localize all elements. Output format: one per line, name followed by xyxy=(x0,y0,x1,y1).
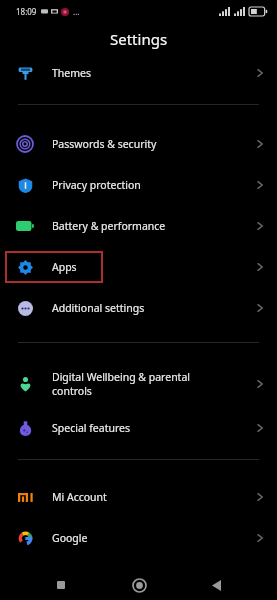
button[interactable]: Google xyxy=(0,517,277,558)
staticText: Battery & performance xyxy=(52,219,166,233)
button[interactable]: Passwords & security xyxy=(0,123,277,164)
staticText: ... xyxy=(73,6,80,17)
button[interactable]: Privacy protection xyxy=(0,164,277,205)
staticText: Settings xyxy=(110,29,168,49)
staticText: Special features xyxy=(52,421,131,435)
staticText: Privacy protection xyxy=(52,178,141,192)
button[interactable]: Home xyxy=(123,570,155,600)
button[interactable]: Digital Wellbeing & parental controls xyxy=(0,361,277,407)
button[interactable]: Special features xyxy=(0,407,277,449)
staticText: 18:09 xyxy=(16,6,37,17)
button[interactable]: Apps xyxy=(0,246,277,287)
button[interactable]: Recent apps xyxy=(45,570,77,600)
button[interactable]: Mi Account xyxy=(0,476,277,517)
button[interactable]: Back xyxy=(200,570,232,600)
staticText: Additional settings xyxy=(52,301,145,315)
button[interactable]: Battery & performance xyxy=(0,205,277,246)
button[interactable]: Themes xyxy=(0,56,277,90)
staticText: Passwords & security xyxy=(52,137,157,151)
staticText: Themes xyxy=(52,66,92,80)
staticText: Apps xyxy=(52,260,77,274)
button[interactable]: Additional settings xyxy=(0,287,277,328)
staticText: Google xyxy=(52,531,88,545)
staticText: Digital Wellbeing & parental controls xyxy=(52,370,191,398)
staticText: Mi Account xyxy=(52,490,107,504)
